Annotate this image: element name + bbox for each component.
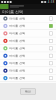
button[interactable]: 마이룸 선택 <box>0 45 56 52</box>
button[interactable]: 마이룸 선택 <box>0 52 56 60</box>
staticText: 마이룸 선택 <box>2 9 23 14</box>
staticText: 마이룸 선택 <box>9 69 25 72</box>
staticText: 마이룸 선택 <box>9 32 25 35</box>
button[interactable]: 확인 <box>20 88 35 94</box>
staticText: 마이룸 선택 <box>9 39 25 42</box>
button[interactable]: Advertisement banner <box>0 4 56 9</box>
button[interactable]: 마이룸 선택 <box>0 67 56 75</box>
button[interactable]: 마이룸 선택 <box>0 37 56 45</box>
button[interactable]: 마이룸 선택 <box>0 22 56 30</box>
staticText: 마이룸 선택 <box>9 24 25 28</box>
staticText: 4:38 <box>48 0 55 4</box>
button[interactable]: 마이룸 선택 <box>0 75 56 82</box>
staticText: 마이룸 선택 <box>9 76 25 80</box>
staticText: 확인 <box>25 90 31 93</box>
staticText: 마이룸 선택 <box>9 62 25 65</box>
button[interactable]: 마이룸 선택 <box>0 15 56 22</box>
staticText: 마이룸 선택 <box>9 54 25 57</box>
button[interactable]: 마이룸 선택 <box>0 60 56 67</box>
button[interactable]: 마이룸 선택 <box>0 30 56 37</box>
staticText: 마이룸 선택 <box>9 17 25 20</box>
staticText: 마이룸 선택 <box>9 47 25 50</box>
